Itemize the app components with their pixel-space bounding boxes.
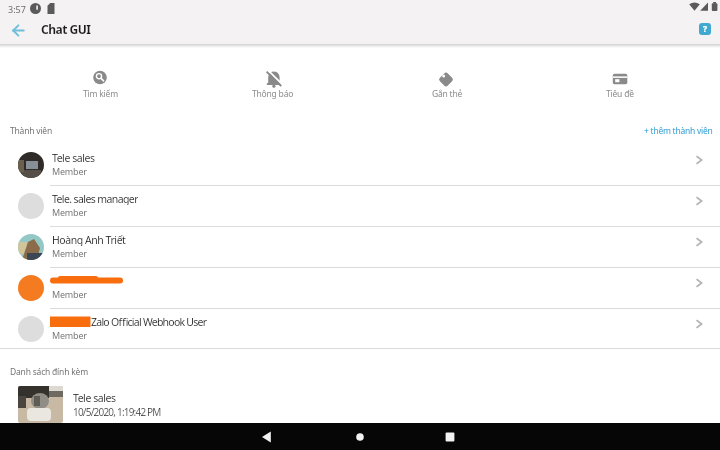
staticText: Member: [52, 206, 87, 218]
staticText: Hoàng Anh Triết: [52, 233, 126, 246]
staticText: Chat GUI: [41, 21, 91, 37]
staticText: Thành viên: [10, 125, 53, 137]
button[interactable]: [60, 58, 140, 106]
staticText: Tele sales: [73, 391, 116, 404]
staticText: Member: [52, 165, 87, 177]
staticText: Member: [52, 288, 87, 300]
staticText: 10/5/2020, 1:19:42 PM: [73, 405, 161, 418]
button[interactable]: ?: [699, 23, 711, 35]
button[interactable]: [0, 267, 720, 308]
button[interactable]: [241, 423, 293, 450]
staticText: + thêm thành viên: [644, 125, 713, 137]
button[interactable]: [334, 423, 386, 450]
staticText: Member: [52, 329, 87, 341]
staticText: Tìm kiếm: [83, 88, 118, 100]
staticText: Tele sales: [52, 151, 95, 164]
staticText: ?: [703, 23, 708, 35]
staticText: Tele. sales manager: [52, 192, 138, 205]
button[interactable]: [580, 58, 660, 106]
staticText: Danh sách đính kèm: [10, 366, 88, 378]
button[interactable]: [4, 17, 32, 44]
button[interactable]: [233, 58, 313, 106]
button[interactable]: [0, 226, 720, 267]
staticText: Member: [52, 247, 87, 259]
button[interactable]: [0, 185, 720, 226]
button[interactable]: [0, 308, 720, 349]
staticText: Zalo Official Webhook User: [91, 315, 207, 328]
button[interactable]: [424, 423, 476, 450]
button[interactable]: [0, 383, 720, 423]
button[interactable]: [407, 58, 487, 106]
button[interactable]: + thêm thành viên: [617, 120, 713, 141]
staticText: Tiêu đề: [606, 88, 634, 100]
staticText: Gắn thẻ: [432, 88, 463, 100]
staticText: 3:57: [8, 3, 26, 15]
button[interactable]: [0, 144, 720, 185]
staticText: Thông báo: [252, 88, 294, 100]
